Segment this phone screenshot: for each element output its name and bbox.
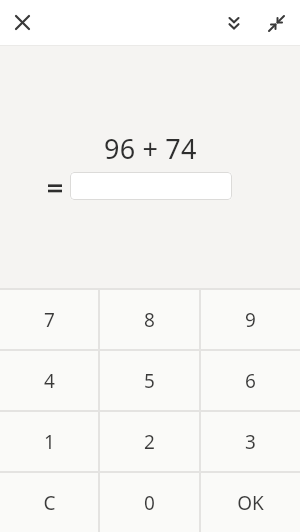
staticText: 8 [144, 307, 155, 333]
button[interactable]: C [0, 473, 98, 532]
staticText: 2 [144, 429, 155, 455]
button[interactable] [214, 3, 254, 43]
button[interactable]: 9 [201, 290, 300, 349]
staticText: 6 [245, 368, 256, 394]
button[interactable]: 6 [201, 351, 300, 410]
staticText: 4 [44, 368, 55, 394]
staticText: C [43, 490, 56, 516]
button[interactable]: 3 [201, 412, 300, 471]
staticText: 96 + 74 [104, 130, 197, 167]
staticText: OK [237, 490, 264, 516]
staticText: 1 [44, 429, 55, 455]
button[interactable]: 2 [100, 412, 199, 471]
button[interactable] [0, 0, 45, 45]
button[interactable]: OK [201, 473, 300, 532]
button[interactable]: 4 [0, 351, 98, 410]
staticText: 3 [245, 429, 256, 455]
staticText: 9 [245, 307, 256, 333]
staticText: 5 [144, 368, 155, 394]
button[interactable]: 0 [100, 473, 199, 532]
staticText: 7 [44, 307, 55, 333]
button[interactable]: 7 [0, 290, 98, 349]
button[interactable] [70, 172, 232, 200]
button[interactable]: 8 [100, 290, 199, 349]
button[interactable] [254, 1, 298, 45]
button[interactable]: 5 [100, 351, 199, 410]
button[interactable]: 1 [0, 412, 98, 471]
staticText: 0 [144, 490, 155, 516]
